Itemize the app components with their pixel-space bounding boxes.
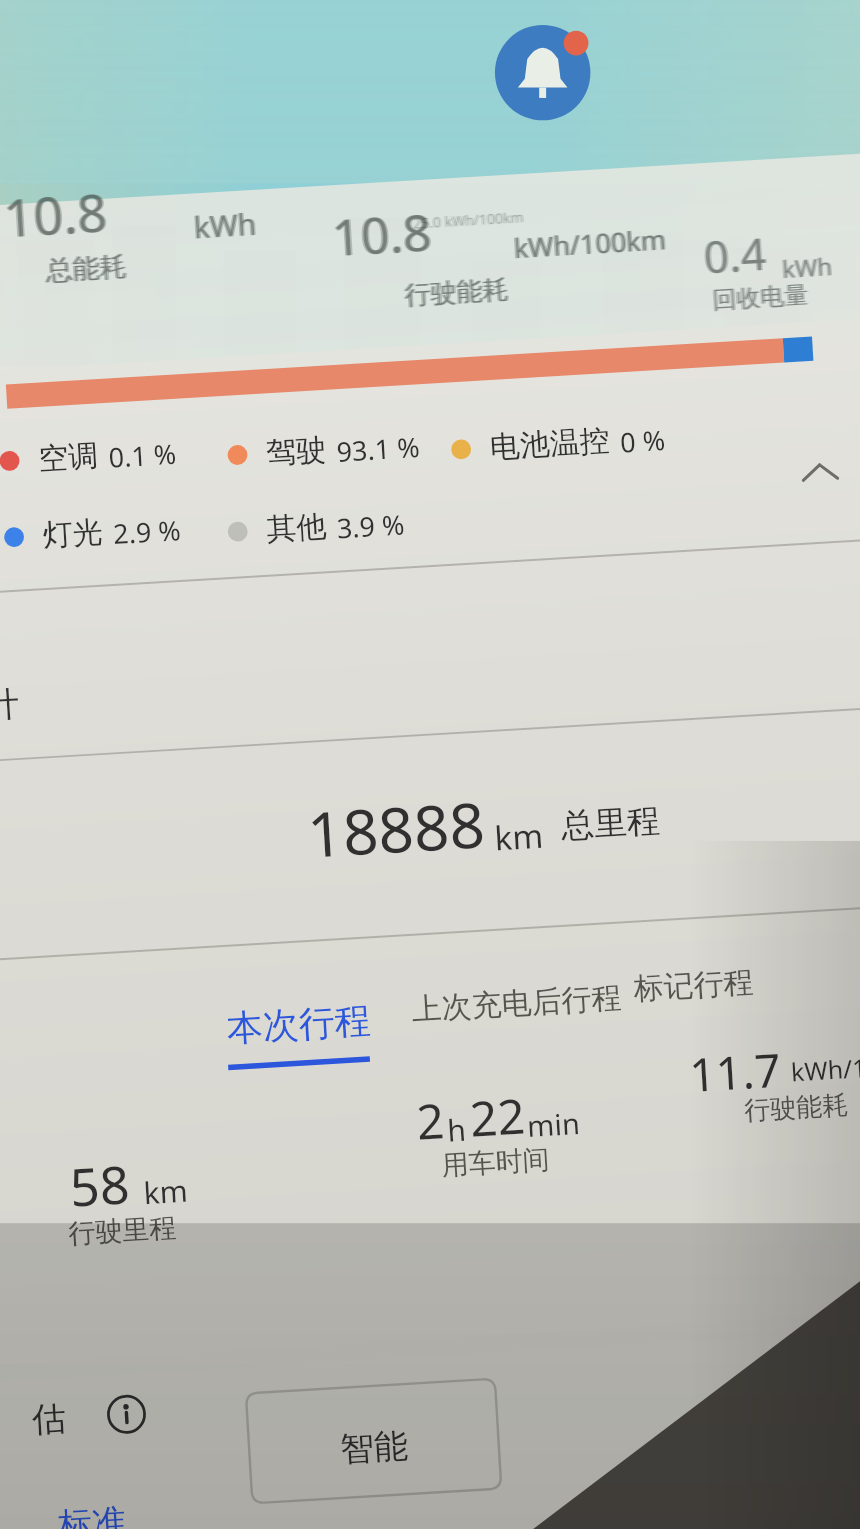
other: Energy consumption screen [0, 0, 860, 1529]
button[interactable]: Energy consumption screen [0, 0, 860, 1529]
